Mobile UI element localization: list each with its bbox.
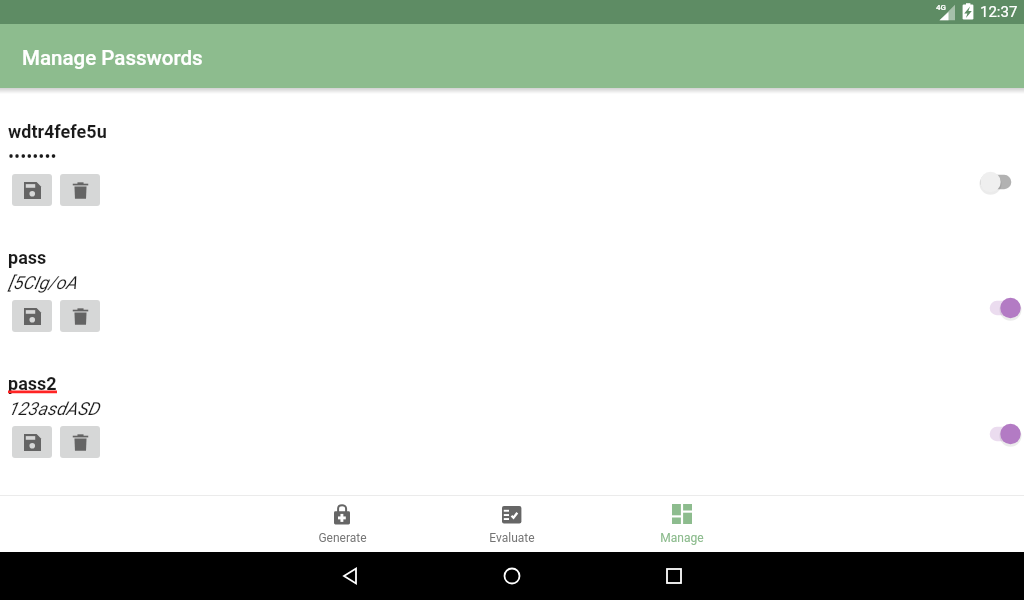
staticText: pass2 xyxy=(8,373,57,394)
staticText: •••••••• xyxy=(8,146,57,167)
button[interactable]: Save password xyxy=(12,426,52,458)
button[interactable]: Save password xyxy=(12,300,52,332)
button[interactable]: Save password xyxy=(12,174,52,206)
staticText: 12:37 xyxy=(980,3,1018,21)
button[interactable]: Delete password xyxy=(60,174,100,206)
button[interactable]: Evaluate xyxy=(427,496,597,552)
button[interactable]: Manage xyxy=(597,496,767,552)
button[interactable]: Toggle password visibility xyxy=(0,284,1024,332)
staticText: Manage Passwords xyxy=(22,46,203,70)
staticText: wdtr4fefe5u xyxy=(8,121,107,142)
staticText: 4G xyxy=(936,3,946,12)
staticText: Evaluate xyxy=(489,531,535,545)
staticText: Generate xyxy=(318,531,367,545)
button[interactable]: Toggle password visibility xyxy=(0,410,1024,458)
button[interactable]: Delete password xyxy=(60,426,100,458)
staticText: Manage xyxy=(660,531,704,545)
staticText: 123asdASD xyxy=(8,398,100,419)
button[interactable]: Toggle password visibility xyxy=(0,158,1024,206)
button[interactable]: Delete password xyxy=(60,300,100,332)
staticText: [5CIg/oA xyxy=(8,272,77,293)
staticText: pass xyxy=(8,247,47,268)
button[interactable]: Generate xyxy=(257,496,427,552)
